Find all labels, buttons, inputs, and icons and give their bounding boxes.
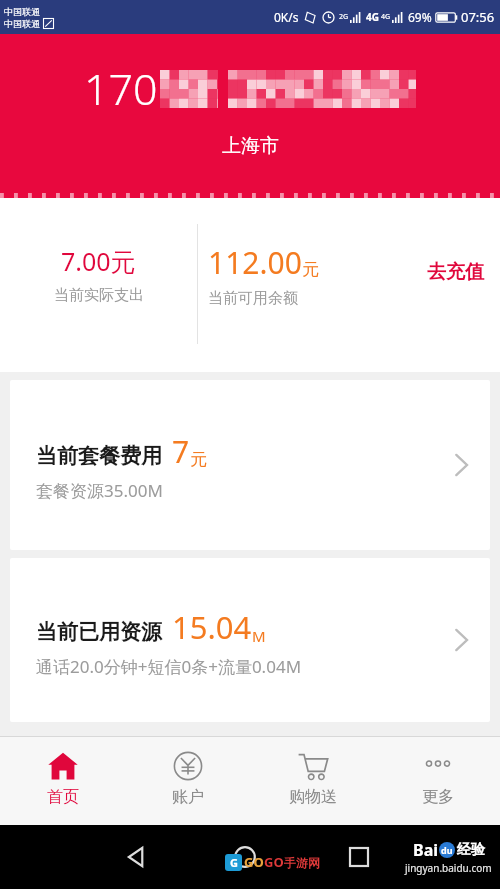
button[interactable]: 购物送: [250, 737, 375, 825]
staticText: 手游网: [284, 855, 320, 870]
button[interactable]: Back: [125, 845, 149, 869]
other: 首页: [48, 751, 78, 781]
other: 更多: [423, 751, 453, 781]
staticText: 中国联通: [4, 18, 40, 29]
staticText: 套餐资源35.00M: [36, 479, 163, 502]
button[interactable]: 当前已用资源: [10, 558, 490, 722]
staticText: 元: [302, 259, 319, 280]
staticText: 经验: [457, 841, 485, 859]
staticText: 4G: [366, 10, 379, 24]
staticText: 购物送: [289, 787, 337, 807]
staticText: 当前可用余额: [208, 289, 298, 308]
staticText: 7.00元: [61, 244, 136, 278]
staticText: M: [252, 626, 266, 646]
other: 购物送: [298, 751, 328, 781]
staticText: G: [230, 855, 238, 870]
staticText: 首页: [47, 787, 79, 807]
staticText: 0K/s: [274, 9, 299, 25]
staticText: 上海市: [222, 134, 279, 158]
staticText: 中国联通: [4, 6, 40, 17]
button[interactable]: 去充值: [411, 254, 500, 290]
staticText: 更多: [422, 787, 454, 807]
staticText: 当前已用资源: [36, 619, 162, 645]
staticText: 当前实际支出: [54, 286, 144, 305]
staticText: 当前套餐费用: [36, 443, 162, 469]
staticText: 69%: [408, 9, 432, 25]
button[interactable]: 账户: [125, 737, 250, 825]
staticText: 账户: [172, 787, 204, 807]
staticText: 2G: [339, 12, 349, 22]
staticText: Bai: [413, 839, 439, 861]
staticText: 4G: [381, 12, 391, 22]
staticText: GO: [264, 853, 284, 871]
button[interactable]: 当前套餐费用: [10, 380, 490, 550]
staticText: 通话20.0分钟+短信0条+流量0.04M: [36, 655, 302, 678]
button[interactable]: 首页: [0, 737, 125, 825]
button[interactable]: 更多: [375, 737, 500, 825]
staticText: 07:56: [461, 8, 495, 26]
staticText: 112.00: [208, 242, 302, 283]
staticText: 15.04: [172, 606, 252, 648]
staticText: du: [441, 844, 453, 856]
staticText: 170: [84, 59, 158, 118]
staticText: GO: [244, 853, 264, 871]
staticText: jingyan.baidu.com: [405, 861, 492, 875]
other: 账户: [173, 751, 203, 781]
staticText: 去充值: [427, 260, 484, 284]
button[interactable]: Home: [234, 846, 256, 868]
staticText: 元: [190, 449, 207, 470]
button[interactable]: Recents: [349, 847, 369, 867]
staticText: 7: [172, 431, 190, 472]
